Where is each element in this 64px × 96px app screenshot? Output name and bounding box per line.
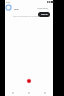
button[interactable]: Sign in (38, 12, 50, 17)
staticText: 9:41 (6, 1, 11, 4)
button[interactable]: Account (5, 4, 12, 11)
staticText: Mail (14, 7, 19, 10)
button[interactable]: Home (21, 89, 37, 96)
staticText: Need help? (37, 7, 48, 10)
button[interactable]: Back (5, 89, 21, 96)
button[interactable]: Record (26, 78, 32, 84)
staticText: Sign in (41, 13, 48, 16)
staticText: Pick an account to continue (13, 15, 41, 18)
button[interactable]: Recent apps (37, 89, 53, 96)
